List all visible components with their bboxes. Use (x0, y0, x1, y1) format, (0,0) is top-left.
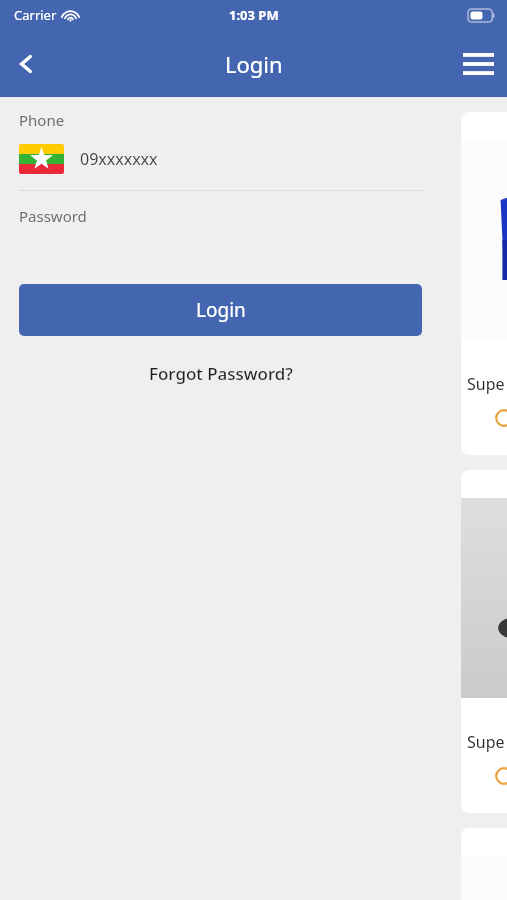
button[interactable]: Forgot Password? (19, 358, 422, 388)
staticText: Forgot Password? (149, 362, 293, 385)
staticText: Login (225, 49, 283, 79)
staticText: 1:03 PM (229, 6, 279, 24)
staticText: Login (196, 297, 246, 323)
button[interactable]: Menu (449, 35, 507, 93)
staticText: Supe (467, 731, 505, 753)
staticText: 09xxxxxxx (80, 148, 158, 170)
button[interactable]: Login (19, 284, 422, 336)
staticText: Supe (467, 373, 505, 395)
staticText: Phone (19, 110, 65, 130)
button[interactable]: Back (0, 38, 52, 90)
staticText: Password (19, 206, 87, 226)
staticText: Carrier (14, 6, 57, 24)
button[interactable]: Supe (461, 112, 507, 455)
button[interactable]: Supe (461, 470, 507, 813)
